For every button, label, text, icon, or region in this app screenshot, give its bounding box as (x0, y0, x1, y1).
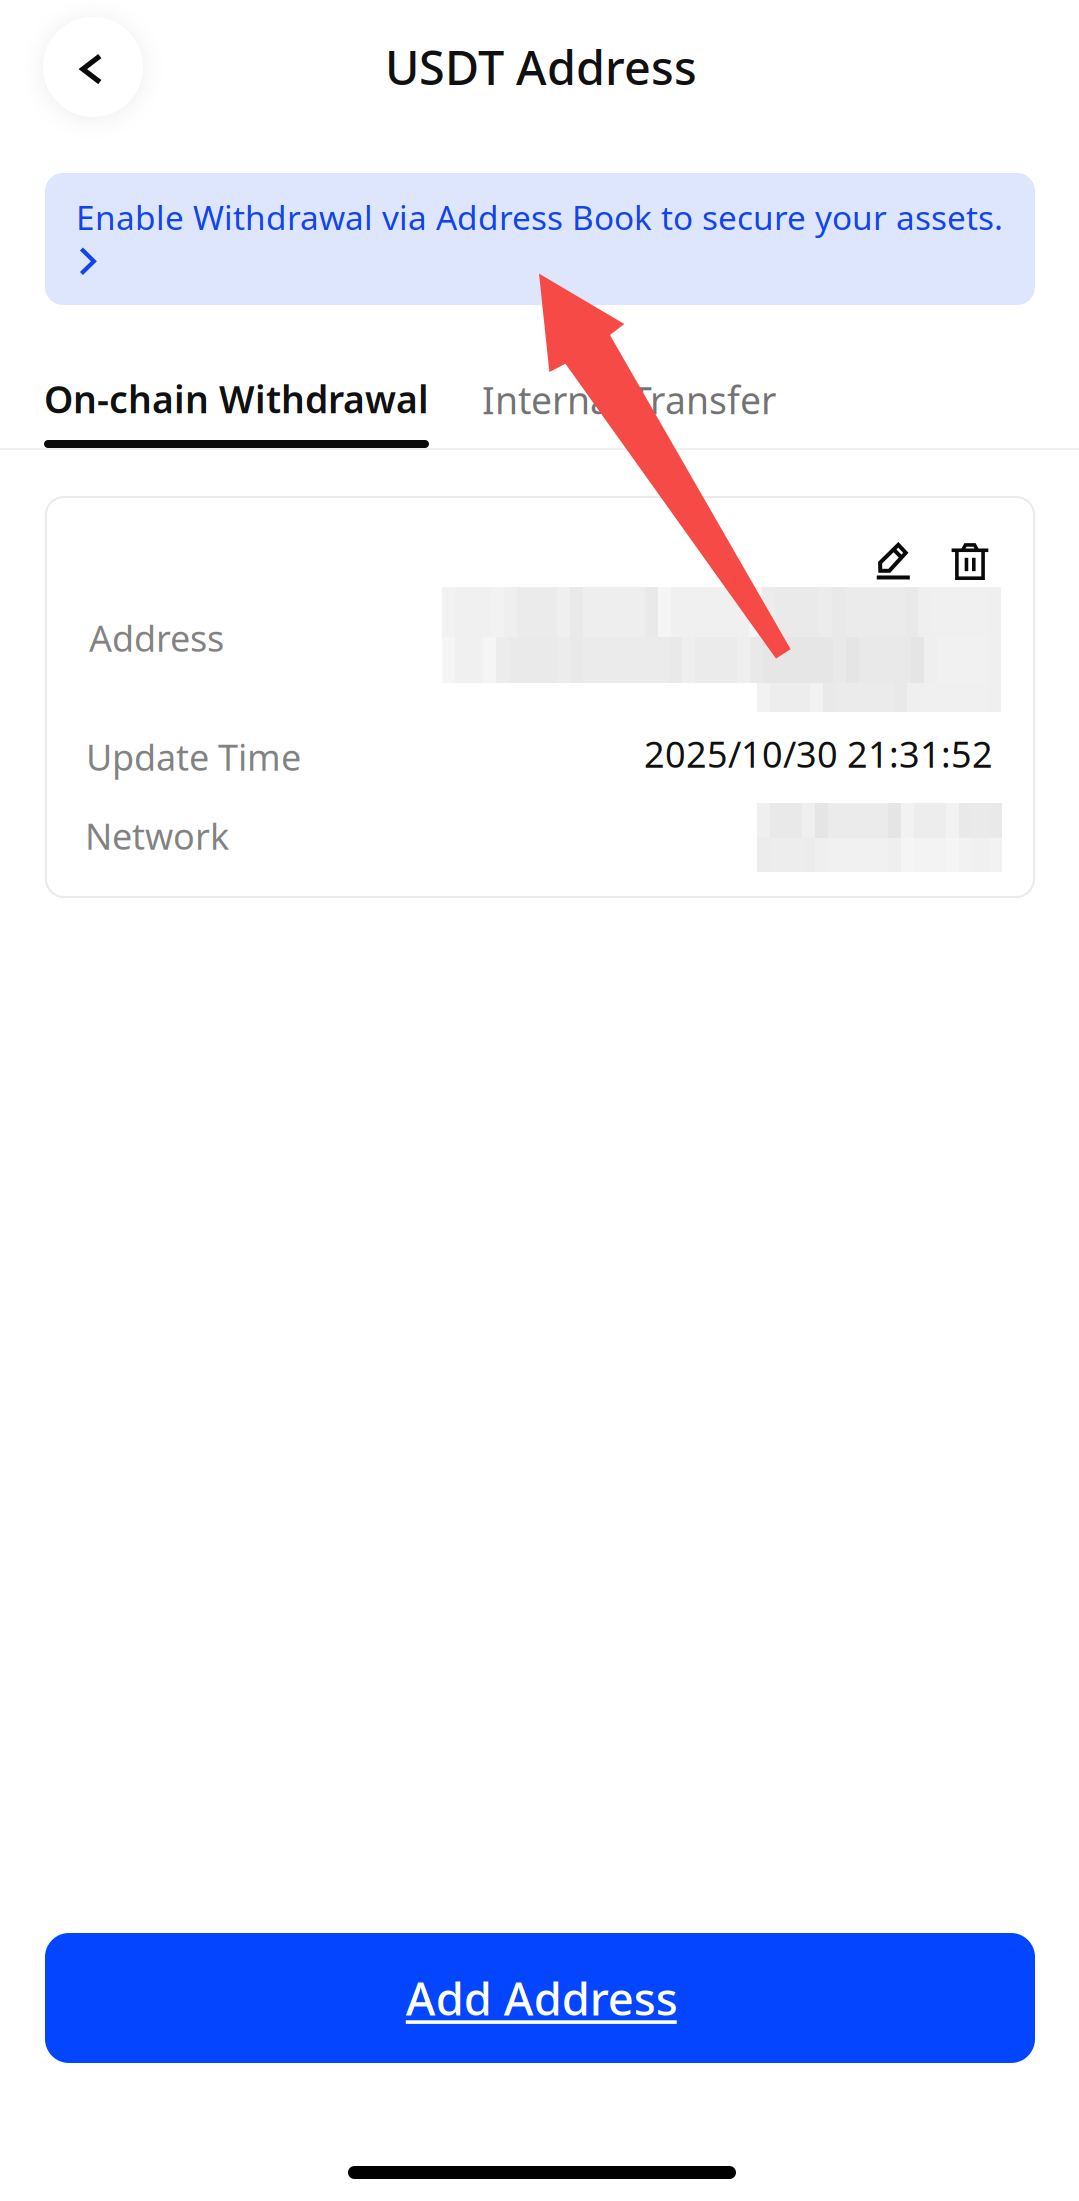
staticText: Address (89, 614, 224, 662)
button[interactable]: Edit address (879, 545, 908, 577)
staticText: Network (85, 812, 229, 860)
button[interactable]: Internal Transfer (482, 364, 782, 456)
staticText: USDT Address (385, 36, 697, 98)
button[interactable]: Delete address (952, 543, 988, 580)
button[interactable]: On-chain Withdrawal (44, 364, 436, 456)
staticText: On-chain Withdrawal (44, 374, 429, 424)
staticText: Enable Withdrawal via Address Book to se… (76, 195, 1003, 239)
button[interactable]: Back (43, 17, 143, 117)
staticText: Internal Transfer (482, 375, 776, 425)
button[interactable]: Add Address (45, 1933, 1035, 2063)
staticText: 2025/10/30 21:31:52 (644, 730, 993, 778)
staticText: Update Time (86, 733, 301, 781)
button[interactable]: Enable Withdrawal via Address Book to se… (45, 173, 1035, 305)
staticText: Add Address (406, 1968, 678, 2028)
